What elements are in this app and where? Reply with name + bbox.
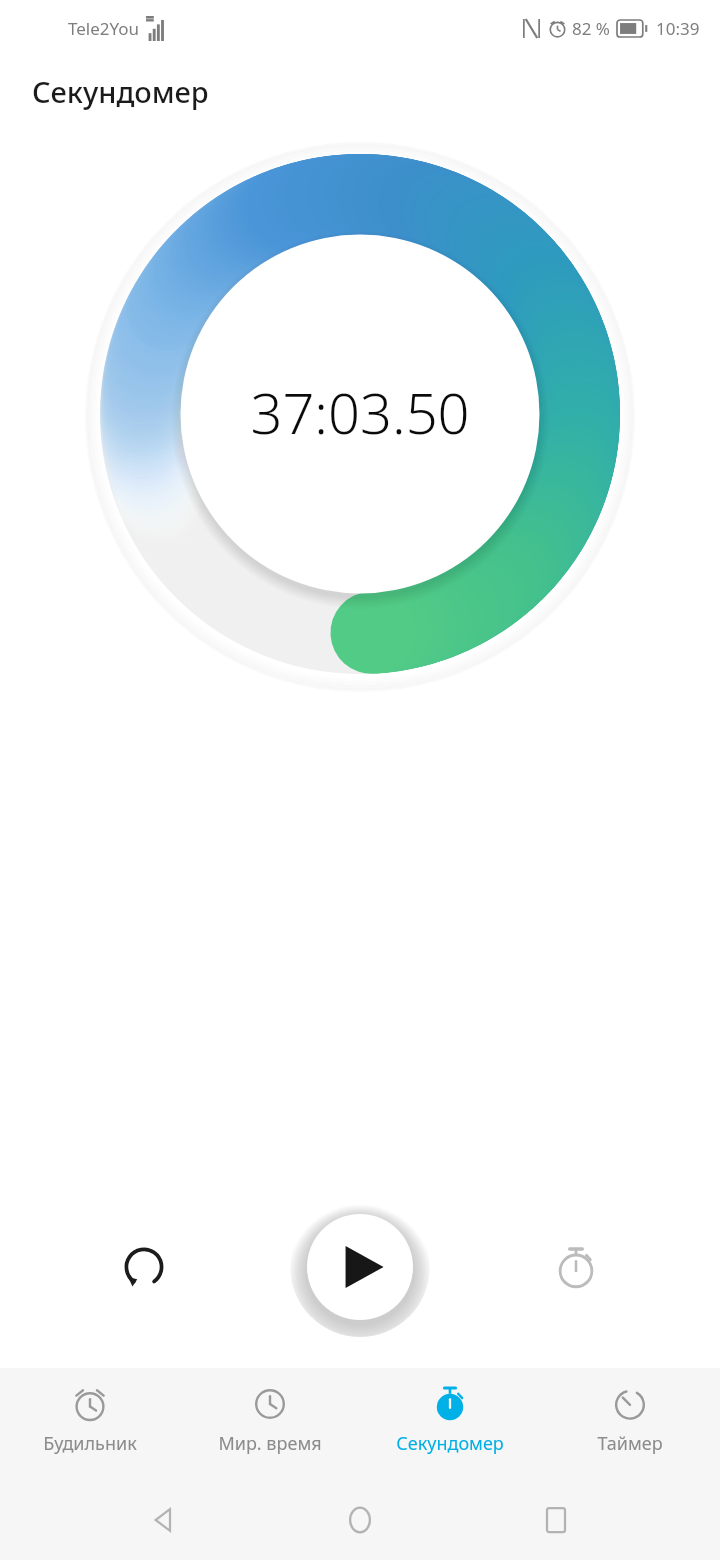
staticText: Будильник: [43, 1431, 137, 1456]
staticText: Таймер: [597, 1431, 663, 1456]
staticText: Tele2You: [68, 17, 140, 40]
staticText: 82 %: [572, 17, 610, 40]
button[interactable]: Секундомер: [360, 1368, 540, 1480]
staticText: Секундомер: [32, 72, 209, 111]
button[interactable]: Запустить: [290, 1197, 430, 1337]
button[interactable]: Сбросить: [108, 1231, 180, 1303]
staticText: 37:03.50: [0, 374, 720, 450]
staticText: Секундомер: [396, 1431, 504, 1456]
button[interactable]: Таймер: [540, 1368, 720, 1480]
button[interactable]: Главный экран: [328, 1488, 392, 1552]
staticText: 10:39: [656, 17, 700, 40]
button[interactable]: Последние приложения: [524, 1488, 588, 1552]
button[interactable]: Круг: [540, 1231, 612, 1303]
button[interactable]: Будильник: [0, 1368, 180, 1480]
button[interactable]: Назад: [132, 1488, 196, 1552]
staticText: Мир. время: [218, 1431, 322, 1456]
button[interactable]: Мир. время: [180, 1368, 360, 1480]
